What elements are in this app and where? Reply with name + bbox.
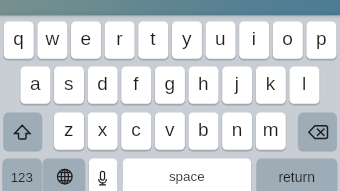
- button[interactable]: [155, 67, 185, 104]
- button[interactable]: Delete: [298, 113, 336, 150]
- button[interactable]: [172, 22, 202, 59]
- button[interactable]: [206, 22, 236, 59]
- button[interactable]: [54, 113, 84, 150]
- button[interactable]: [256, 67, 286, 104]
- button[interactable]: [4, 22, 34, 59]
- button[interactable]: [121, 67, 151, 104]
- button[interactable]: [256, 113, 286, 150]
- button[interactable]: Dictation: [89, 159, 118, 191]
- button[interactable]: [273, 22, 303, 59]
- button[interactable]: [289, 67, 319, 104]
- button[interactable]: [306, 22, 336, 59]
- button[interactable]: [155, 113, 185, 150]
- button[interactable]: [189, 67, 219, 104]
- button[interactable]: [88, 67, 118, 104]
- button[interactable]: [222, 113, 252, 150]
- button[interactable]: [105, 22, 135, 59]
- button[interactable]: [71, 22, 101, 59]
- button[interactable]: [20, 67, 50, 104]
- button[interactable]: [54, 67, 84, 104]
- button[interactable]: [123, 159, 252, 191]
- button[interactable]: Next keyboard: [43, 159, 85, 191]
- button[interactable]: [257, 159, 337, 191]
- button[interactable]: [138, 22, 168, 59]
- button[interactable]: [37, 22, 67, 59]
- button[interactable]: [121, 113, 151, 150]
- button[interactable]: [239, 22, 269, 59]
- button[interactable]: Shift: [4, 113, 42, 150]
- button[interactable]: [189, 113, 219, 150]
- button[interactable]: [88, 113, 118, 150]
- button[interactable]: [3, 159, 42, 191]
- button[interactable]: [222, 67, 252, 104]
